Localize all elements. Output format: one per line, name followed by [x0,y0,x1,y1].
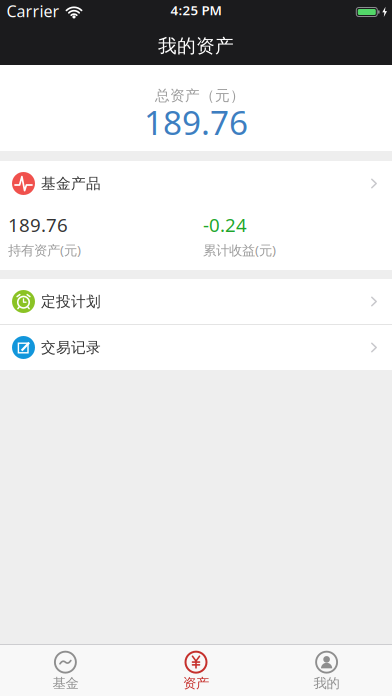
button[interactable]: 资产 [131,644,261,696]
button[interactable]: 交易记录 [0,325,392,370]
staticText: 基金 [52,675,78,692]
staticText: 交易记录 [41,338,101,356]
staticText: Carrier [6,0,59,22]
staticText: 我的 [314,675,340,692]
staticText: 4:25 PM [170,1,221,19]
button[interactable]: 定投计划 [0,279,392,324]
staticText: 资产 [183,675,209,692]
staticText: 我的资产 [158,34,234,57]
staticText: 189.76 [144,100,248,144]
staticText: 总资产（元） [155,86,245,104]
button[interactable]: 我的 [261,644,392,696]
staticText: 累计收益(元) [203,241,276,259]
button[interactable]: 基金产品 [0,161,392,206]
staticText: 持有资产(元) [8,241,81,259]
staticText: -0.24 [203,212,247,237]
staticText: 基金产品 [41,174,101,192]
staticText: 定投计划 [41,292,101,310]
staticText: 189.76 [8,212,68,237]
button[interactable]: 基金 [0,644,131,696]
